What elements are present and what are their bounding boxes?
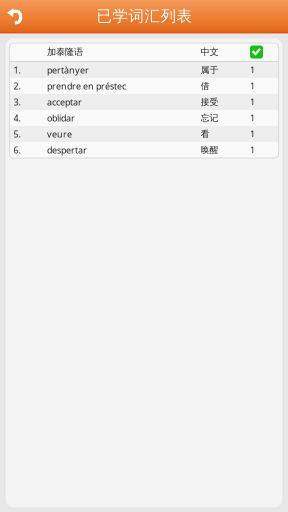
button[interactable]: 4.: [9, 110, 278, 126]
button[interactable]: 6.: [9, 142, 278, 158]
button[interactable]: 3.: [9, 94, 278, 110]
button[interactable]: 1.: [9, 62, 278, 78]
button[interactable]: Back: [0, 0, 32, 32]
staticText: 1: [250, 144, 255, 156]
staticText: 1.: [13, 64, 20, 76]
staticText: 属于: [200, 64, 218, 76]
staticText: 3.: [13, 96, 20, 108]
button[interactable]: Toggle all words: [250, 45, 263, 58]
staticText: 1: [250, 128, 255, 140]
staticText: acceptar: [47, 96, 82, 108]
staticText: 接受: [200, 96, 218, 108]
staticText: veure: [47, 128, 72, 140]
staticText: 1: [250, 80, 255, 92]
staticText: 唤醒: [200, 144, 218, 156]
staticText: despertar: [47, 144, 87, 156]
button[interactable]: 2.: [9, 78, 278, 94]
staticText: 已学词汇列表: [96, 6, 191, 26]
staticText: 6.: [13, 144, 20, 156]
staticText: 2.: [13, 80, 20, 92]
staticText: pertànyer: [47, 64, 89, 76]
button[interactable]: 5.: [9, 126, 278, 142]
staticText: 4.: [13, 112, 20, 124]
staticText: 1: [250, 64, 255, 76]
staticText: 借: [200, 80, 209, 92]
staticText: 中文: [200, 46, 218, 58]
staticText: 加泰隆语: [47, 46, 83, 58]
staticText: 忘记: [200, 112, 218, 124]
staticText: 1: [250, 96, 255, 108]
staticText: prendre en préstec: [47, 80, 126, 92]
staticText: 看: [200, 128, 209, 140]
staticText: oblidar: [47, 112, 75, 124]
staticText: 5.: [13, 128, 20, 140]
staticText: 1: [250, 112, 255, 124]
